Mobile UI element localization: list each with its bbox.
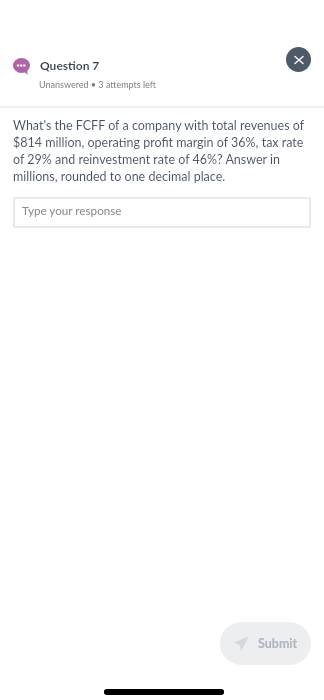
staticText: Submit (258, 636, 298, 651)
staticText: What's the FCFF of a company with total … (13, 118, 309, 183)
button[interactable]: Submit (220, 622, 311, 665)
staticText: Type your response (22, 203, 122, 217)
button[interactable]: Close (286, 47, 311, 72)
staticText: Unanswered • 3 attempts left (39, 79, 156, 90)
staticText: Question 7 (40, 58, 100, 72)
button[interactable]: Type your response (13, 197, 311, 228)
